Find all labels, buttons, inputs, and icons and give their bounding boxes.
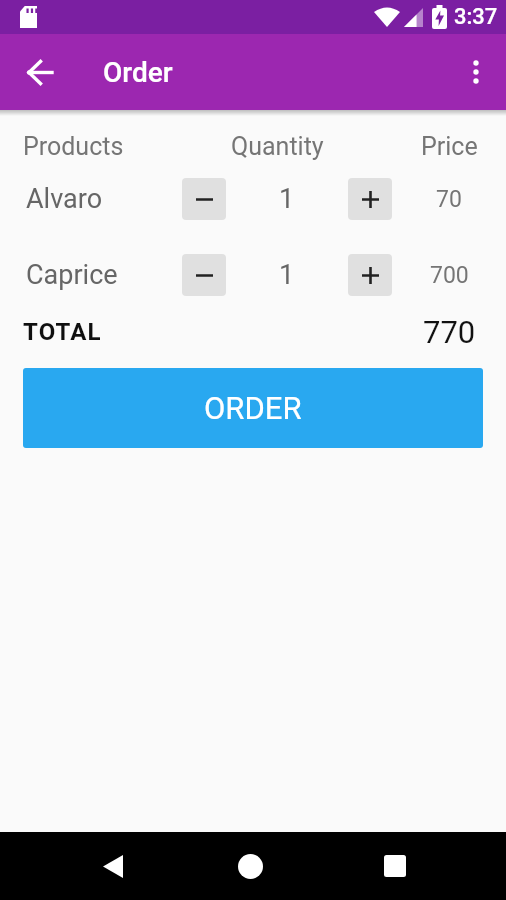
button[interactable] <box>182 178 226 220</box>
staticText: TOTAL <box>23 318 102 346</box>
button[interactable]: ORDER <box>23 368 483 448</box>
staticText: Products <box>23 132 124 161</box>
staticText: Quantity <box>231 132 324 161</box>
staticText: 70 <box>436 186 462 213</box>
button[interactable] <box>16 48 64 96</box>
button[interactable] <box>348 178 392 220</box>
staticText: 1 <box>279 183 295 215</box>
staticText: Order <box>103 56 173 89</box>
staticText: 700 <box>430 262 469 289</box>
staticText: 3:37 <box>454 4 498 30</box>
button[interactable] <box>456 52 496 92</box>
button[interactable] <box>91 844 135 888</box>
staticText: ORDER <box>204 390 302 426</box>
button[interactable] <box>182 254 226 296</box>
staticText: 770 <box>423 314 476 350</box>
staticText: 1 <box>279 259 295 291</box>
staticText: Price <box>421 132 478 161</box>
button[interactable] <box>373 844 417 888</box>
button[interactable] <box>348 254 392 296</box>
staticText: Caprice <box>26 259 118 291</box>
staticText: Alvaro <box>26 183 103 215</box>
button[interactable] <box>228 844 272 888</box>
